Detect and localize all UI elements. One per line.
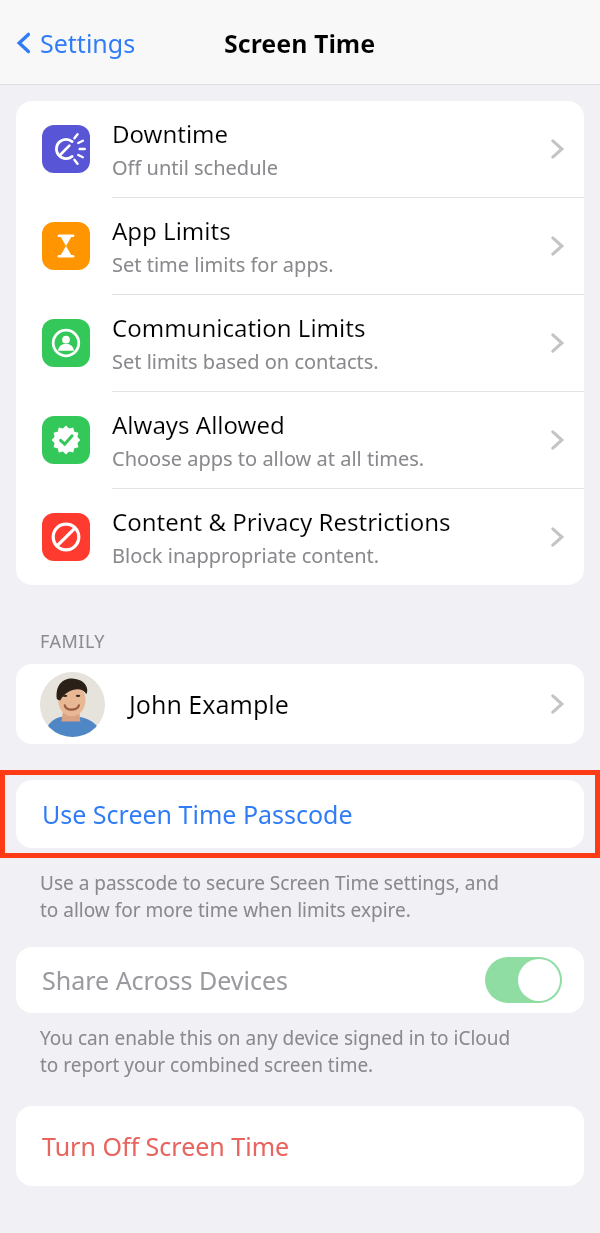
staticText: FAMILY — [40, 629, 105, 654]
button[interactable]: Always Allowed — [16, 392, 584, 488]
staticText: You can enable this on any device signed… — [40, 1025, 511, 1078]
other: Share Across Devices toggle, on — [485, 957, 562, 1003]
staticText: Screen Time — [224, 26, 376, 60]
staticText: Communication Limits — [112, 311, 366, 344]
staticText: Off until schedule — [112, 154, 278, 181]
button[interactable]: Communication Limits — [16, 295, 584, 391]
button[interactable]: Settings — [8, 20, 142, 66]
staticText: Content & Privacy Restrictions — [112, 505, 451, 538]
button[interactable]: Downtime — [16, 101, 584, 197]
button[interactable]: Use Screen Time Passcode — [16, 780, 584, 848]
staticText: Settings — [40, 26, 136, 60]
staticText: Turn Off Screen Time — [42, 1129, 290, 1163]
staticText: App Limits — [112, 214, 231, 247]
button[interactable]: Content & Privacy Restrictions — [16, 489, 584, 585]
staticText: Always Allowed — [112, 408, 285, 441]
staticText: John Example — [129, 687, 550, 721]
staticText: Choose apps to allow at all times. — [112, 445, 425, 472]
staticText: Share Across Devices — [42, 963, 485, 997]
staticText: Block inappropriate content. — [112, 542, 380, 569]
button[interactable]: Turn Off Screen Time — [16, 1106, 584, 1186]
staticText: Downtime — [112, 117, 229, 150]
staticText: Use a passcode to secure Screen Time set… — [40, 870, 499, 923]
button[interactable]: John Example — [16, 664, 584, 744]
button[interactable]: Share Across Devices — [16, 947, 584, 1013]
staticText: Set time limits for apps. — [112, 251, 334, 278]
staticText: Set limits based on contacts. — [112, 348, 379, 375]
button[interactable]: App Limits — [16, 198, 584, 294]
staticText: Use Screen Time Passcode — [42, 797, 353, 831]
